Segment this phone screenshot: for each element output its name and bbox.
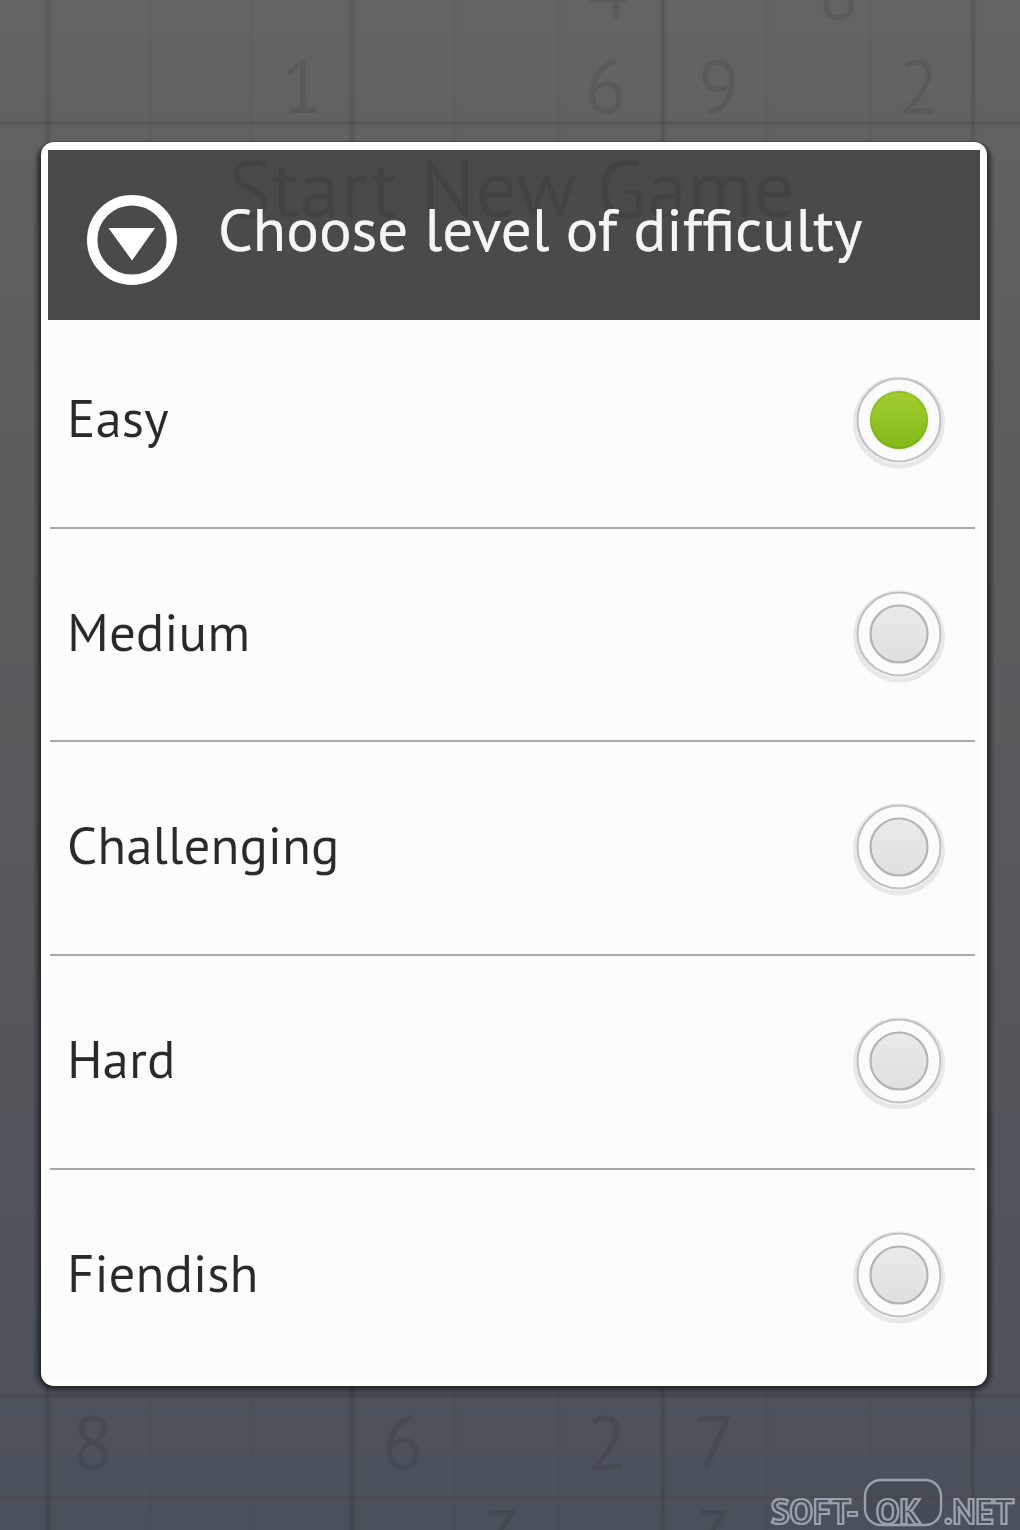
staticText: 2 <box>898 36 940 134</box>
staticText: 6 <box>585 36 627 134</box>
staticText: 7 <box>694 1392 736 1490</box>
staticText: 8 <box>818 0 860 40</box>
staticText: 9 <box>698 36 740 134</box>
staticText: OK <box>876 1488 922 1530</box>
button[interactable]: Hard <box>48 954 980 1168</box>
staticText: Start New Game <box>233 140 704 228</box>
staticText: .NET <box>944 1488 1014 1530</box>
button[interactable]: Challenging <box>48 740 980 954</box>
staticText: Easy <box>67 383 851 452</box>
staticText: Medium <box>67 597 851 666</box>
button[interactable]: Easy <box>48 313 980 527</box>
staticText: Fiendish <box>67 1238 851 1307</box>
staticText: Start New Game <box>228 142 796 240</box>
staticText: Challenging <box>67 810 851 879</box>
staticText: 1 <box>281 36 323 134</box>
other: Expand <box>84 192 180 288</box>
staticText: Choose level of difficulty <box>218 189 863 268</box>
button[interactable]: Fiendish <box>48 1168 980 1382</box>
staticText: 8 <box>72 1392 114 1490</box>
staticText: 2 <box>586 1392 628 1490</box>
staticText: SOFT- <box>771 1488 859 1530</box>
staticText: 6 <box>382 1392 424 1490</box>
staticText: Hard <box>67 1024 851 1093</box>
button[interactable]: Medium <box>48 527 980 741</box>
button[interactable]: Expand <box>48 150 980 320</box>
